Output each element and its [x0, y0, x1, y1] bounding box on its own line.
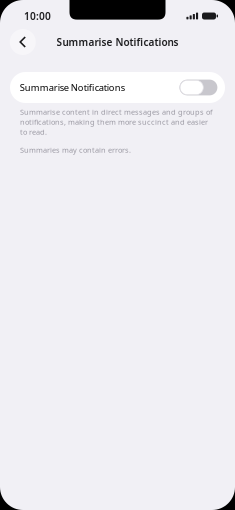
- button[interactable]: Back: [10, 29, 36, 55]
- staticText: Summarise Notifications: [20, 81, 125, 94]
- staticText: 10:00: [24, 9, 51, 23]
- staticText: Summaries may contain errors.: [20, 145, 131, 155]
- button[interactable]: Summarise Notifications: [10, 72, 225, 103]
- staticText: Summarise Notifications: [56, 35, 178, 49]
- staticText: Summarise content in direct messages and…: [20, 107, 213, 137]
